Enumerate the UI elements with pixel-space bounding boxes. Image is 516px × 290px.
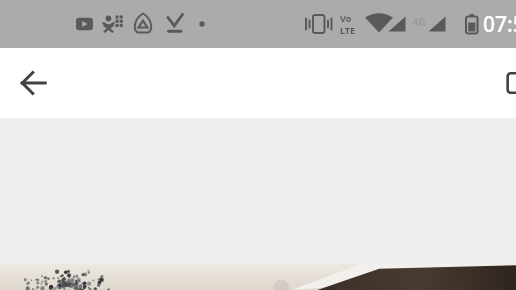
staticText: 07:5 (483, 10, 516, 39)
button[interactable]: Photo (0, 264, 516, 290)
staticText: Vo (340, 12, 352, 24)
staticText: 4G (412, 14, 427, 29)
button[interactable]: Back (9, 59, 57, 107)
button[interactable]: More options (492, 59, 516, 107)
staticText: LTE (340, 24, 356, 36)
